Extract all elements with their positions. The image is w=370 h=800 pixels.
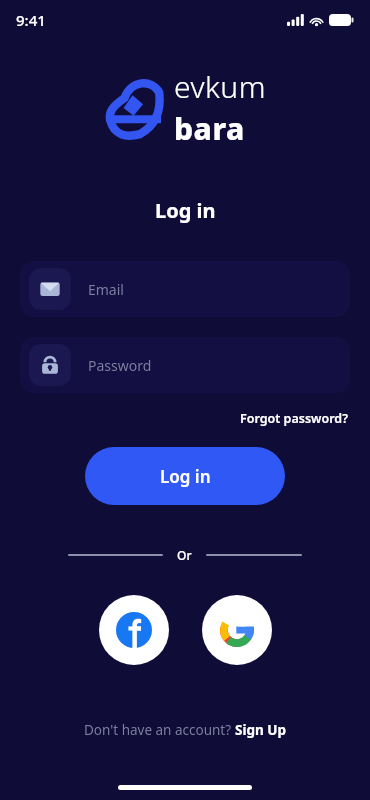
button[interactable]: Sign in with Google [202,595,272,665]
staticText: Or [177,547,192,563]
staticText: Log in [155,197,216,224]
button[interactable]: Log in [85,447,285,505]
staticText: Email [88,280,124,299]
staticText: bara [174,108,245,149]
button[interactable]: Password [20,337,350,393]
button[interactable]: Email [20,261,350,317]
button[interactable]: Forgot password? [238,408,350,429]
staticText: Forgot password? [240,410,348,427]
staticText: evkum [174,66,266,107]
staticText: Log in [160,465,211,488]
staticText: Don't have an account? [84,721,235,739]
button[interactable]: Sign in with Facebook [99,595,169,665]
staticText: Password [88,356,152,375]
button[interactable]: Don't have an account? [0,717,370,743]
staticText: Sign Up [235,721,287,739]
staticText: 9:41 [16,10,46,30]
